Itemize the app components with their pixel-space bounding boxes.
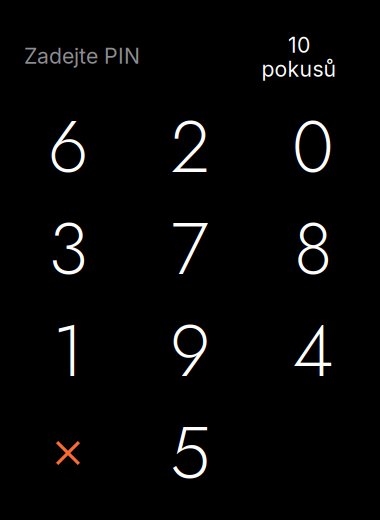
button[interactable]: 2 (129, 99, 251, 195)
staticText: 4 (292, 299, 333, 403)
staticText: 3 (48, 197, 87, 301)
button[interactable]: 6 (7, 99, 129, 195)
staticText: 0 (292, 95, 334, 199)
staticText: 2 (170, 95, 209, 199)
button[interactable]: 8 (252, 201, 374, 297)
button[interactable]: 3 (7, 201, 129, 297)
staticText: Zadejte PIN (24, 43, 140, 69)
staticText: 8 (294, 197, 332, 301)
staticText: 10 (288, 32, 310, 58)
staticText: 5 (170, 401, 210, 505)
button[interactable]: 4 (252, 303, 374, 399)
button[interactable]: 0 (252, 99, 374, 195)
button[interactable]: Delete (7, 405, 129, 501)
staticText: 7 (171, 197, 209, 301)
button[interactable]: 5 (129, 405, 251, 501)
staticText: pokusů (261, 56, 336, 82)
button[interactable]: 7 (129, 201, 251, 297)
staticText: 1 (52, 299, 83, 403)
staticText: 9 (170, 299, 210, 403)
staticText: 6 (48, 95, 88, 199)
button[interactable]: 9 (129, 303, 251, 399)
button[interactable]: 1 (7, 303, 129, 399)
